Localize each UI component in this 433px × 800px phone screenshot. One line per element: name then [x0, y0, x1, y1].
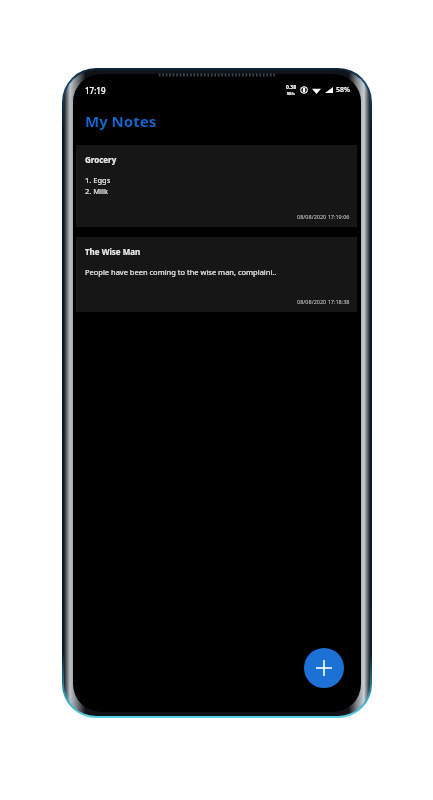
staticText: My Notes: [85, 111, 157, 131]
button[interactable]: Grocery: [76, 145, 357, 227]
staticText: People have been coming to the wise man,…: [85, 267, 277, 277]
button[interactable]: Add note: [304, 648, 344, 688]
staticText: 08/08/2020 17:18:38: [297, 298, 350, 305]
button[interactable]: The Wise Man: [76, 237, 357, 312]
staticText: 0.38: [286, 84, 296, 91]
staticText: KB/s: [287, 91, 295, 96]
staticText: 58%: [336, 85, 350, 95]
staticText: The Wise Man: [85, 246, 141, 257]
staticText: 1. Eggs: [85, 175, 111, 185]
staticText: 2. Milk: [85, 186, 108, 196]
staticText: Grocery: [85, 154, 117, 165]
staticText: 17:19: [85, 85, 106, 96]
staticText: 08/08/2020 17:19:06: [297, 213, 350, 220]
